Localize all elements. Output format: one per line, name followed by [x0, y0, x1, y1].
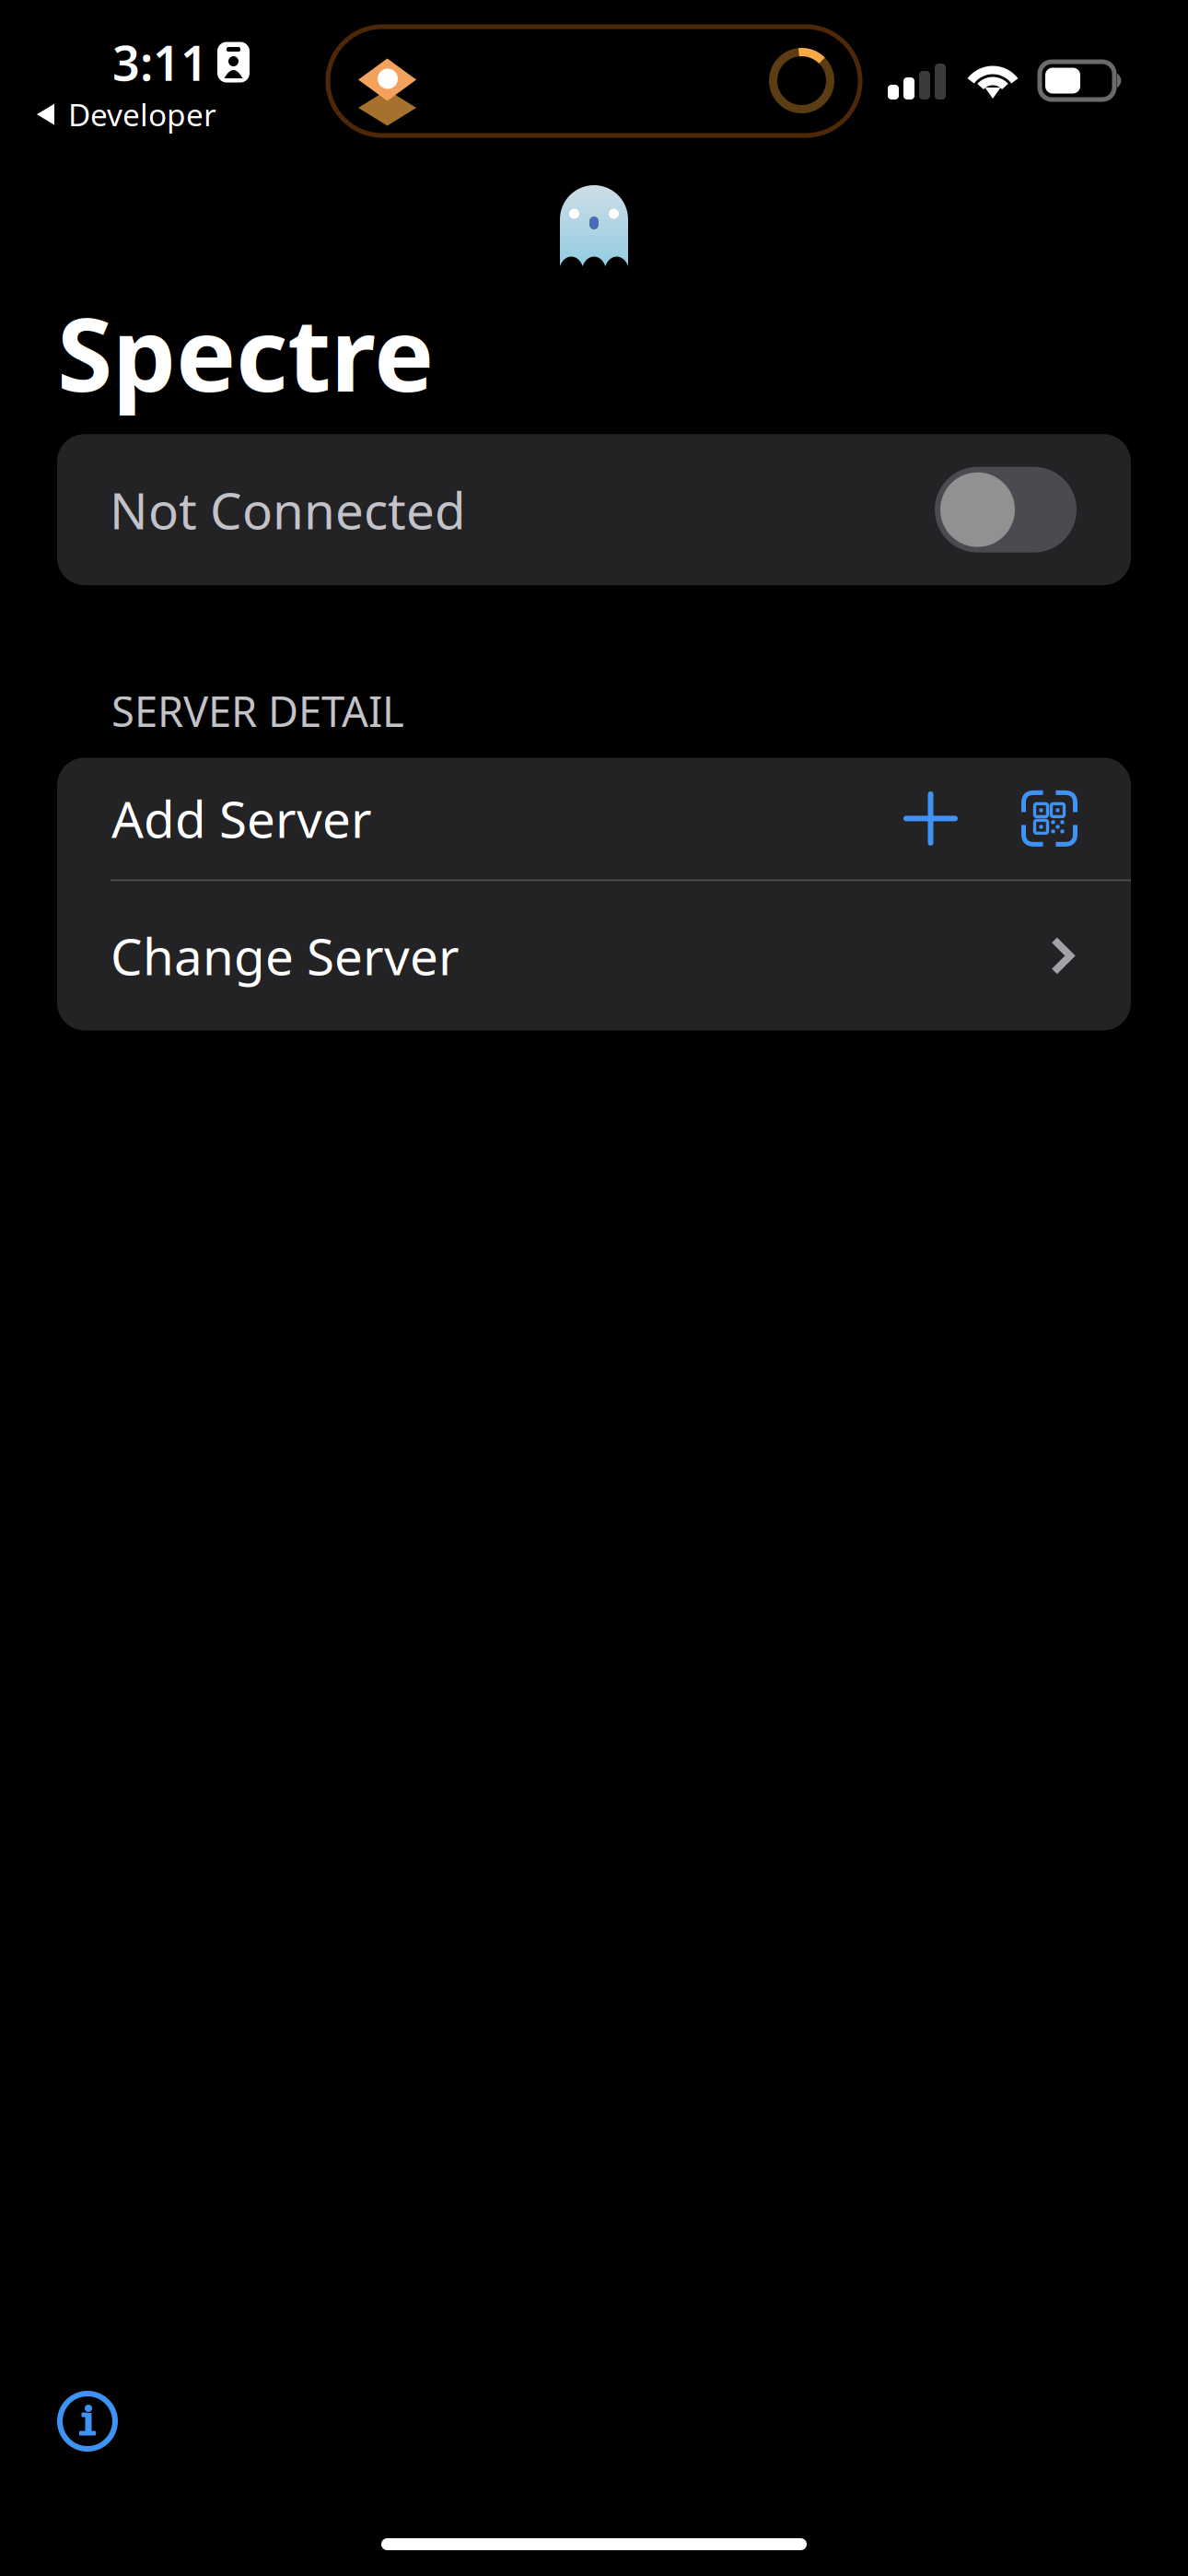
button[interactable]: Add Server — [57, 758, 1131, 879]
staticText: 3:11 — [112, 30, 208, 94]
button[interactable]: Change Server — [57, 881, 1131, 1030]
staticText: Not Connected — [110, 476, 466, 543]
button[interactable]: Info — [58, 2392, 117, 2451]
button[interactable]: Not Connected — [57, 434, 1131, 585]
staticText: Spectre — [57, 286, 434, 419]
button[interactable]: Developer — [37, 94, 216, 135]
staticText: SERVER DETAIL — [111, 683, 404, 738]
staticText: Add Server — [111, 785, 372, 852]
staticText: Change Server — [111, 922, 460, 989]
staticText: Developer — [68, 94, 216, 135]
